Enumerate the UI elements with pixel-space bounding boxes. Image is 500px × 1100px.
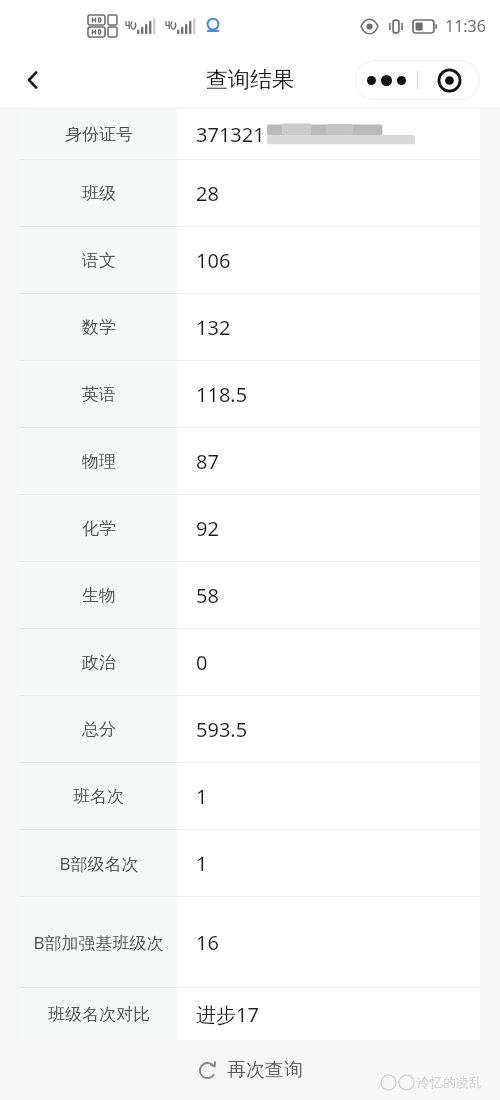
staticText: 16 [196, 929, 219, 956]
button[interactable]: 政治 [20, 629, 480, 695]
staticText: 班级名次对比 [48, 1004, 150, 1025]
button[interactable]: 总分 [20, 696, 480, 762]
staticText: 132 [196, 314, 231, 341]
staticText: 生物 [82, 585, 116, 606]
button[interactable]: 班级名次对比 [20, 988, 480, 1040]
staticText: 英语 [82, 384, 116, 405]
staticText: 1 [196, 850, 208, 877]
staticText: 92 [196, 515, 219, 542]
staticText: 87 [196, 448, 219, 475]
staticText: B部级名次 [59, 852, 139, 875]
staticText: 371321 [196, 121, 265, 148]
staticText: 118.5 [196, 381, 248, 408]
button[interactable]: 化学 [20, 495, 480, 561]
staticText: 语文 [82, 250, 116, 271]
staticText: 政治 [82, 652, 116, 673]
button[interactable]: 再次查询 [197, 1058, 303, 1082]
staticText: 再次查询 [227, 1058, 303, 1082]
staticText: 11:36 [445, 15, 486, 37]
staticText: 593.5 [196, 716, 248, 743]
staticText: 28 [196, 180, 219, 207]
button[interactable]: 语文 [20, 227, 480, 293]
staticText: 58 [196, 582, 219, 609]
staticText: 进步17 [196, 1001, 259, 1028]
staticText: B部加强基班级次 [33, 931, 164, 954]
staticText: 查询结果 [206, 66, 294, 94]
staticText: 班名次 [73, 786, 124, 807]
button[interactable]: More [355, 60, 417, 100]
staticText: 冷忆的凌乱 [417, 1074, 482, 1090]
button[interactable]: 班级 [20, 160, 480, 226]
button[interactable]: 英语 [20, 361, 480, 427]
button[interactable]: 数学 [20, 294, 480, 360]
button[interactable]: Back [10, 57, 56, 103]
staticText: 物理 [82, 451, 116, 472]
button[interactable]: 物理 [20, 428, 480, 494]
button[interactable]: B部级名次 [20, 830, 480, 896]
staticText: 总分 [82, 719, 116, 740]
button[interactable]: 班名次 [20, 763, 480, 829]
button[interactable]: Close [418, 60, 480, 100]
staticText: 106 [196, 247, 231, 274]
staticText: 身份证号 [65, 124, 133, 145]
staticText: 0 [196, 649, 208, 676]
button[interactable]: B部加强基班级次 [20, 897, 480, 987]
staticText: 班级 [82, 183, 116, 204]
staticText: 数学 [82, 317, 116, 338]
staticText: 化学 [82, 518, 116, 539]
staticText: 1 [196, 783, 208, 810]
button[interactable]: 生物 [20, 562, 480, 628]
other: More and close [355, 60, 480, 100]
